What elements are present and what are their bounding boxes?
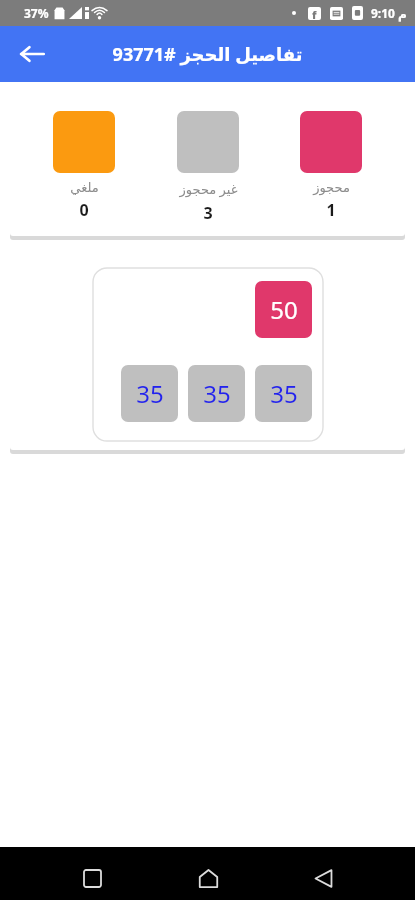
button[interactable]: Back (8, 30, 56, 78)
staticText: 37% (24, 5, 49, 21)
staticText: 35 (270, 377, 298, 410)
staticText: 35 (136, 377, 164, 410)
button[interactable]: 35 (255, 365, 312, 422)
button[interactable]: غير محجوز (158, 111, 258, 224)
button[interactable]: Back (300, 857, 346, 900)
button[interactable]: 35 (188, 365, 245, 422)
staticText: ملغي (70, 180, 99, 195)
staticText: 35 (203, 377, 231, 410)
staticText: 3 (203, 202, 213, 224)
button[interactable]: Home (185, 857, 231, 900)
button[interactable]: 35 (121, 365, 178, 422)
button[interactable]: محجوز (281, 111, 381, 221)
staticText: f (312, 7, 317, 20)
button[interactable]: Recent apps (69, 857, 115, 900)
staticText: 1 (326, 199, 336, 221)
staticText: محجوز (313, 180, 350, 195)
button[interactable]: 50 (255, 281, 312, 338)
staticText: 0 (79, 199, 89, 221)
staticText: تفاصيل الحجز #93771 (0, 42, 415, 67)
button[interactable]: ملغي (34, 111, 134, 221)
staticText: 50 (270, 293, 298, 326)
staticText: م 9:10 (371, 5, 407, 21)
staticText: غير محجوز (179, 180, 238, 198)
